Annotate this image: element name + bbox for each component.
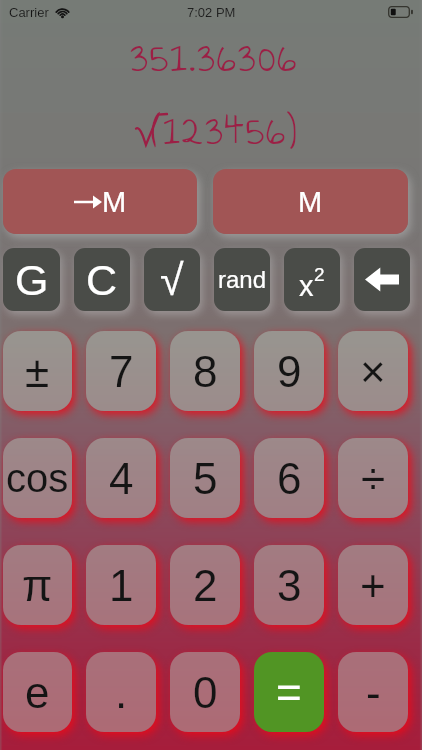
button[interactable]: rand bbox=[214, 248, 270, 311]
staticText: 7:02 PM bbox=[187, 5, 236, 20]
button[interactable]: 9 bbox=[254, 331, 324, 411]
staticText: 9 bbox=[277, 347, 302, 396]
staticText: rand bbox=[218, 266, 267, 293]
staticText: 0 bbox=[193, 668, 218, 717]
button[interactable]: M bbox=[213, 169, 408, 234]
staticText: M bbox=[102, 186, 127, 218]
staticText: + bbox=[360, 561, 386, 610]
staticText: 351.36306 bbox=[3, 25, 422, 90]
staticText: 2 bbox=[314, 264, 325, 285]
staticText: √ bbox=[160, 256, 184, 304]
staticText: 6 bbox=[277, 454, 302, 503]
staticText: . bbox=[115, 668, 128, 717]
button[interactable]: 7 bbox=[86, 331, 156, 411]
button[interactable]: - bbox=[338, 652, 408, 732]
staticText: 8 bbox=[193, 347, 218, 396]
button[interactable]: 4 bbox=[86, 438, 156, 518]
staticText: - bbox=[366, 668, 381, 717]
button[interactable]: G bbox=[3, 248, 60, 311]
staticText: 7 bbox=[109, 347, 134, 396]
staticText: 5 bbox=[193, 454, 218, 503]
staticText: C bbox=[86, 256, 118, 304]
other: Wi-Fi bbox=[55, 5, 70, 20]
button[interactable]: + bbox=[338, 545, 408, 625]
staticText: e bbox=[25, 668, 50, 717]
button[interactable]: 1 bbox=[86, 545, 156, 625]
button[interactable]: 3 bbox=[254, 545, 324, 625]
button[interactable]: cos bbox=[3, 438, 72, 518]
staticText: × bbox=[360, 347, 386, 396]
button[interactable]: 2 bbox=[170, 545, 240, 625]
button[interactable]: 6 bbox=[254, 438, 324, 518]
button[interactable]: x bbox=[284, 248, 340, 311]
staticText: M bbox=[298, 186, 323, 218]
button[interactable]: C bbox=[74, 248, 130, 311]
staticText: = bbox=[276, 668, 302, 717]
staticText: ± bbox=[25, 347, 50, 396]
button[interactable]: e bbox=[3, 652, 72, 732]
button[interactable]: × bbox=[338, 331, 408, 411]
staticText: x bbox=[299, 270, 314, 302]
staticText: (123456) bbox=[14, 98, 422, 163]
staticText: 1 bbox=[109, 561, 134, 610]
staticText: G bbox=[15, 256, 49, 304]
staticText: cos bbox=[6, 456, 69, 501]
button[interactable]: M bbox=[3, 169, 197, 234]
button[interactable]: . bbox=[86, 652, 156, 732]
button[interactable]: ± bbox=[3, 331, 72, 411]
staticText: 4 bbox=[109, 454, 134, 503]
button[interactable]: ÷ bbox=[338, 438, 408, 518]
button[interactable]: 8 bbox=[170, 331, 240, 411]
button[interactable]: 0 bbox=[170, 652, 240, 732]
staticText: Carrier bbox=[9, 5, 49, 20]
staticText: 2 bbox=[193, 561, 218, 610]
button[interactable]: = bbox=[254, 652, 324, 732]
staticText: ÷ bbox=[361, 454, 386, 503]
button[interactable]: Backspace bbox=[354, 248, 410, 311]
button[interactable]: π bbox=[3, 545, 72, 625]
staticText: π bbox=[22, 561, 53, 610]
staticText: 3 bbox=[277, 561, 302, 610]
other: Battery bbox=[388, 6, 413, 18]
button[interactable]: 5 bbox=[170, 438, 240, 518]
button[interactable]: √ bbox=[144, 248, 200, 311]
